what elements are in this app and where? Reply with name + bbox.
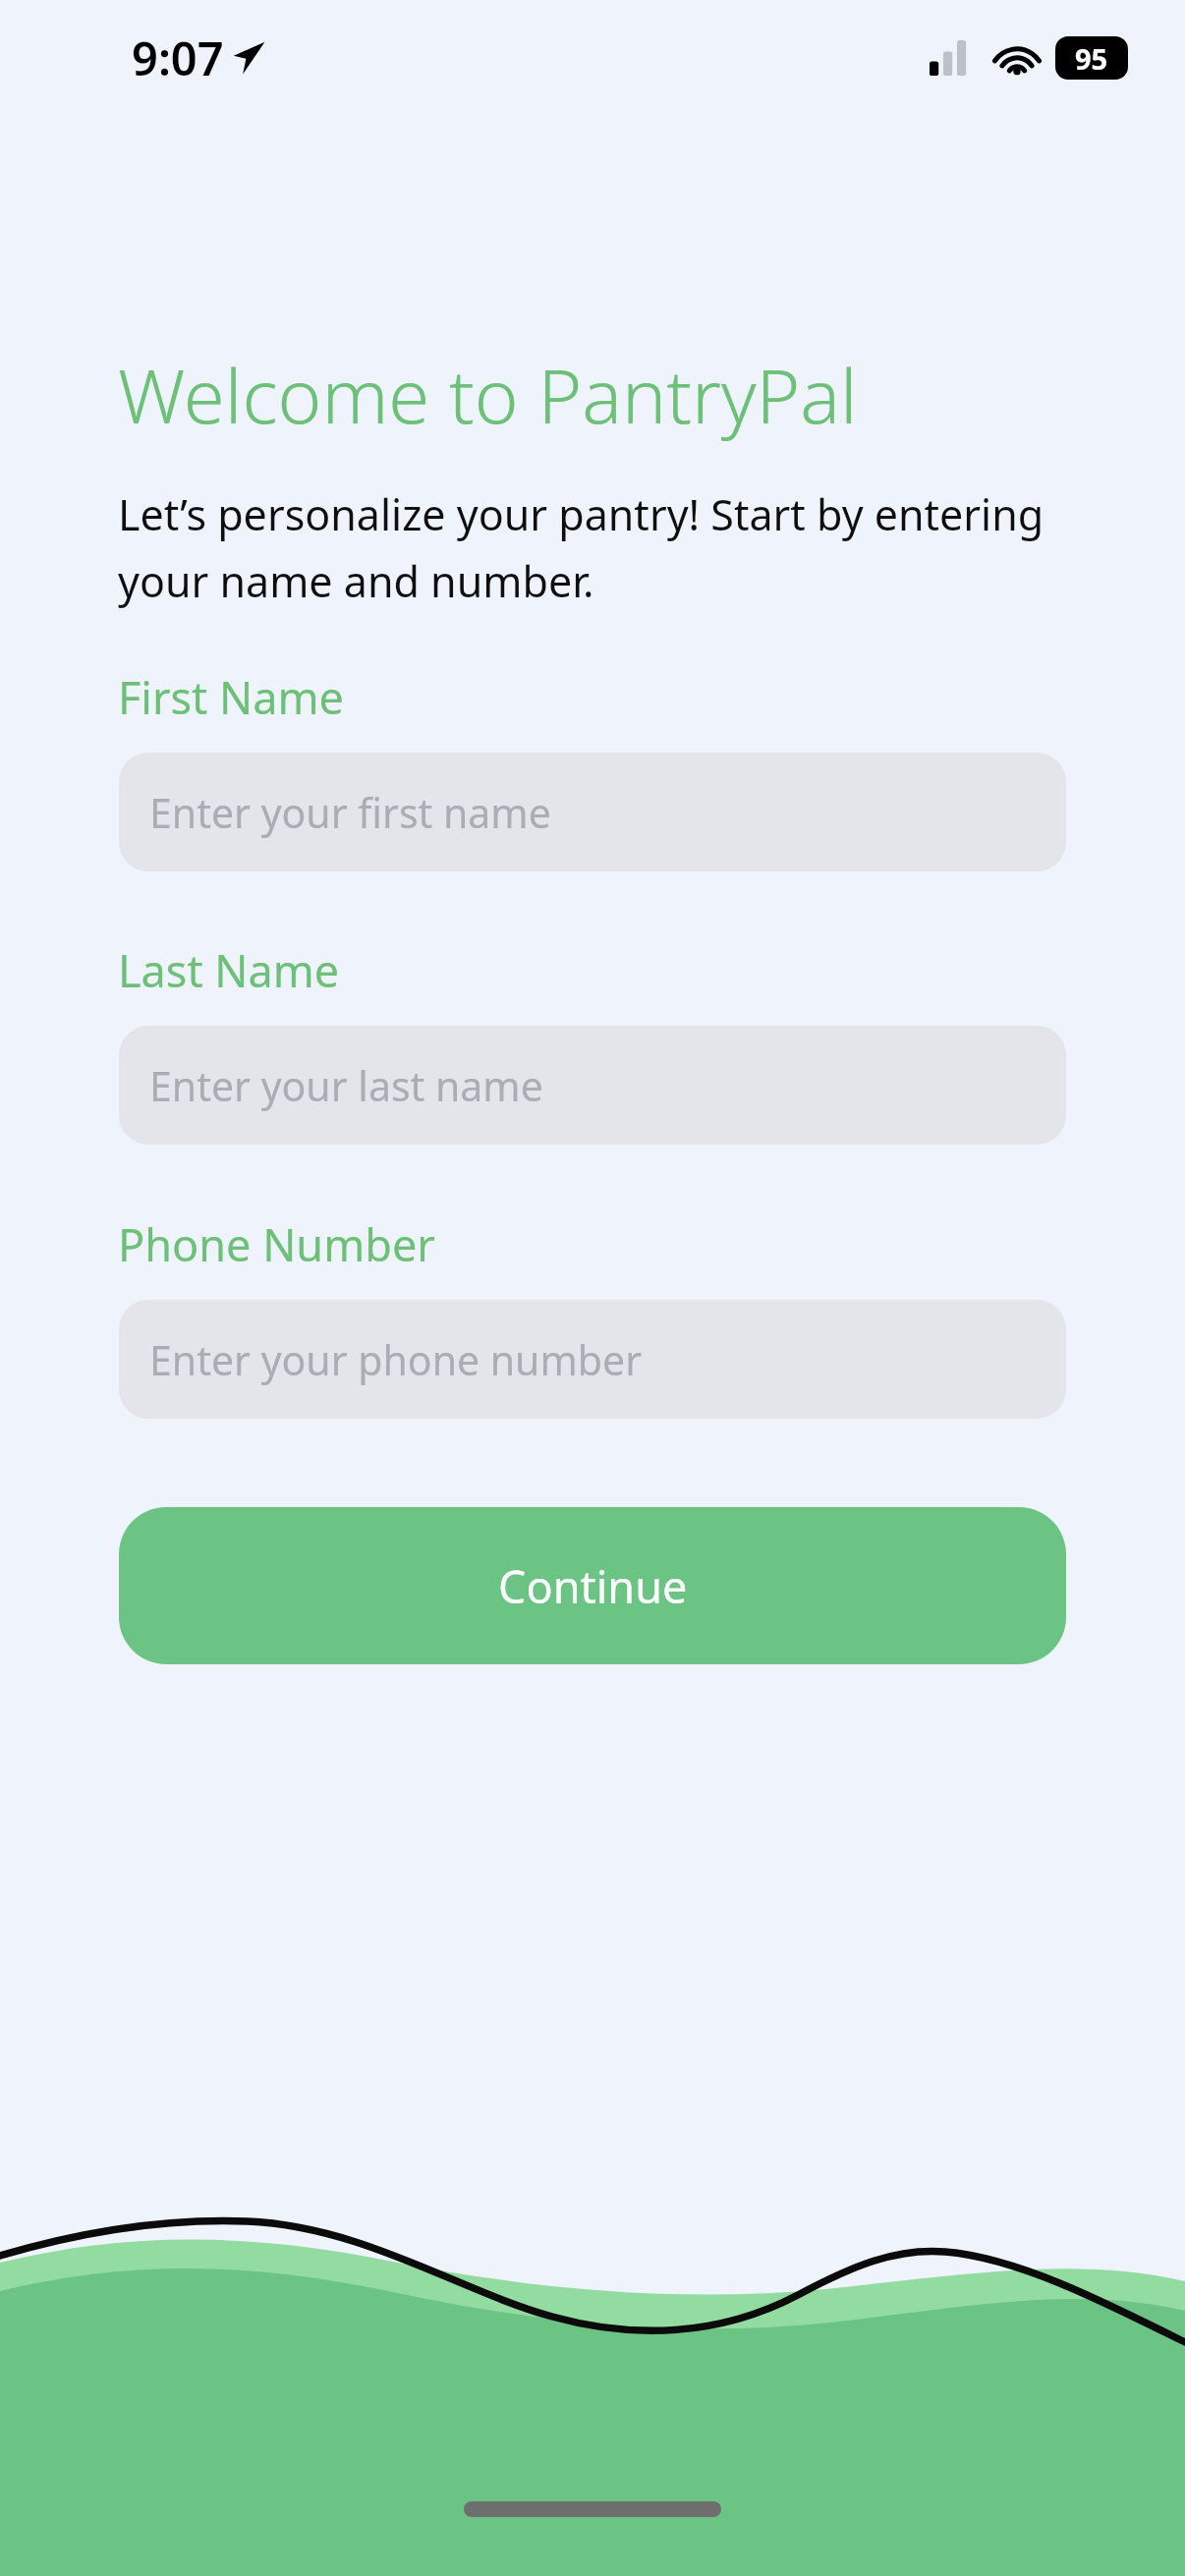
staticText: 95 xyxy=(1075,39,1108,78)
staticText: Enter your last name xyxy=(149,1058,543,1113)
staticText: Welcome to PantryPal xyxy=(118,344,858,446)
staticText: Continue xyxy=(498,1556,688,1616)
staticText: Phone Number xyxy=(118,1214,435,1274)
staticText: Last Name xyxy=(118,940,340,1000)
staticText: Enter your phone number xyxy=(149,1332,643,1387)
button[interactable]: Continue xyxy=(119,1507,1066,1664)
staticText: First Name xyxy=(118,667,344,727)
button[interactable]: Enter your phone number xyxy=(119,1300,1066,1419)
staticText: Enter your first name xyxy=(149,785,551,840)
button[interactable]: Enter your last name xyxy=(119,1026,1066,1145)
staticText: 9:07 xyxy=(132,27,224,89)
staticText: Let’s personalize your pantry! Start by … xyxy=(118,485,1095,610)
button[interactable]: Enter your first name xyxy=(119,753,1066,871)
